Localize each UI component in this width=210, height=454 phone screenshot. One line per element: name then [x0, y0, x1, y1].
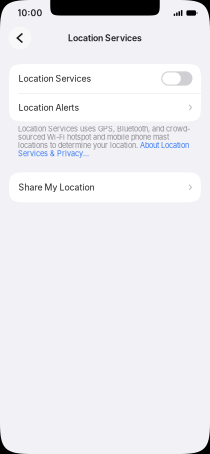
button[interactable]: Location Alerts: [9, 93, 201, 121]
staticText: Location Services uses GPS, Bluetooth, a…: [18, 124, 190, 133]
staticText: Share My Location: [18, 182, 94, 193]
staticText: 10:00: [17, 8, 42, 18]
button[interactable]: Location Services: [9, 64, 201, 93]
staticText: Location Alerts: [18, 102, 79, 113]
button[interactable]: Share My Location: [9, 172, 201, 202]
button[interactable]: Back: [8, 27, 31, 49]
staticText: Location Services: [68, 33, 142, 43]
staticText: About Location: [140, 141, 189, 150]
staticText: Services & Privacy...: [18, 149, 89, 158]
staticText: Location Services: [18, 73, 91, 84]
staticText: locations to determine your location.: [18, 141, 140, 150]
staticText: sourced Wi-Fi hotspot and mobile phone m…: [18, 133, 169, 142]
